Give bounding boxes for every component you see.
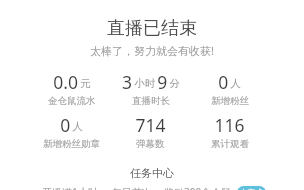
staticText: 弹幕数 [136,138,165,150]
staticText: 新增粉丝 [211,95,249,107]
staticText: 太棒了，努力就会有收获! [90,43,214,58]
staticText: 每日首次 [112,186,152,190]
staticText: 去完成 [240,188,263,190]
staticText: 直播时长 [132,95,170,107]
button[interactable]: 开播满1小时 [42,185,266,190]
staticText: 新增粉丝勋章 [43,138,100,150]
staticText: 0.0 元 [53,70,91,94]
staticText: 0 人 [218,70,241,94]
staticText: 直播已结束 [107,17,197,40]
staticText: 3 小时 9 分 [122,70,180,94]
staticText: 累计观看 [211,138,249,150]
staticText: 金仓鼠流水 [48,95,96,107]
staticText: 116 [214,113,245,137]
staticText: 任务中心 [130,166,174,180]
staticText: 714 [135,113,166,137]
staticText: 奖励300金仓鼠 [164,185,232,190]
staticText: 开播满1小时 [42,185,98,190]
staticText: 0 人 [60,113,83,137]
